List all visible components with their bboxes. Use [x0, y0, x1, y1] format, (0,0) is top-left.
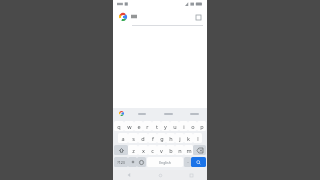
staticText: z: [132, 147, 135, 154]
button[interactable]: [181, 108, 207, 119]
staticText: a: [121, 135, 125, 142]
button[interactable]: f: [148, 133, 157, 143]
button[interactable]: z: [128, 145, 138, 155]
button[interactable]: b: [166, 145, 175, 155]
button[interactable]: q: [114, 121, 124, 131]
button[interactable]: [131, 13, 139, 20]
button[interactable]: Recent apps: [176, 170, 207, 180]
staticText: e: [137, 123, 141, 130]
staticText: f: [152, 135, 154, 142]
staticText: c: [151, 147, 154, 154]
button[interactable]: x: [138, 145, 148, 155]
button[interactable]: j: [175, 133, 184, 143]
button[interactable]: c: [148, 145, 157, 155]
button[interactable]: e: [134, 121, 143, 131]
button[interactable]: Back: [113, 170, 145, 180]
staticText: k: [187, 135, 190, 142]
button[interactable]: ?123: [114, 157, 128, 167]
staticText: x: [142, 147, 145, 154]
staticText: d: [141, 135, 145, 142]
button[interactable]: v: [157, 145, 166, 155]
button[interactable]: k: [184, 133, 193, 143]
button[interactable]: y: [161, 121, 170, 131]
button[interactable]: w: [124, 121, 134, 131]
button[interactable]: h: [166, 133, 175, 143]
staticText: p: [200, 123, 204, 130]
staticText: t: [156, 123, 158, 130]
staticText: v: [160, 147, 163, 154]
button[interactable]: s: [128, 133, 138, 143]
staticText: English: [159, 160, 171, 165]
staticText: ?123: [117, 160, 125, 165]
staticText: m: [186, 147, 192, 154]
button[interactable]: l: [193, 133, 202, 143]
button[interactable]: Google search: [113, 108, 129, 119]
staticText: s: [132, 135, 135, 142]
button[interactable]: [129, 108, 155, 119]
button[interactable]: Backspace: [193, 145, 206, 155]
button[interactable]: t: [152, 121, 161, 131]
button[interactable]: r: [143, 121, 152, 131]
button[interactable]: m: [184, 145, 193, 155]
button[interactable]: n: [175, 145, 184, 155]
button[interactable]: Search: [191, 157, 206, 167]
button[interactable]: i: [179, 121, 188, 131]
staticText: w: [127, 123, 132, 130]
button[interactable]: Shift: [114, 145, 128, 155]
button[interactable]: Google: [117, 11, 128, 22]
button[interactable]: g: [157, 133, 166, 143]
button[interactable]: Period: [184, 157, 191, 167]
staticText: r: [146, 123, 149, 130]
button[interactable]: o: [188, 121, 197, 131]
staticText: i: [183, 123, 185, 130]
staticText: y: [164, 123, 167, 130]
staticText: j: [179, 135, 181, 142]
staticText: q: [117, 123, 121, 130]
staticText: g: [160, 135, 164, 142]
staticText: b: [169, 147, 173, 154]
button[interactable]: p: [197, 121, 206, 131]
button[interactable]: Space: [147, 157, 183, 167]
staticText: h: [169, 135, 173, 142]
staticText: l: [197, 135, 199, 142]
button[interactable]: d: [138, 133, 148, 143]
button[interactable]: Settings: [128, 157, 137, 167]
staticText: n: [178, 147, 182, 154]
button[interactable]: Emoji: [137, 157, 146, 167]
button[interactable]: [155, 108, 181, 119]
button[interactable]: u: [170, 121, 179, 131]
button[interactable]: a: [118, 133, 128, 143]
staticText: u: [173, 123, 177, 130]
button[interactable]: Clear search: [193, 12, 203, 22]
staticText: o: [191, 123, 195, 130]
